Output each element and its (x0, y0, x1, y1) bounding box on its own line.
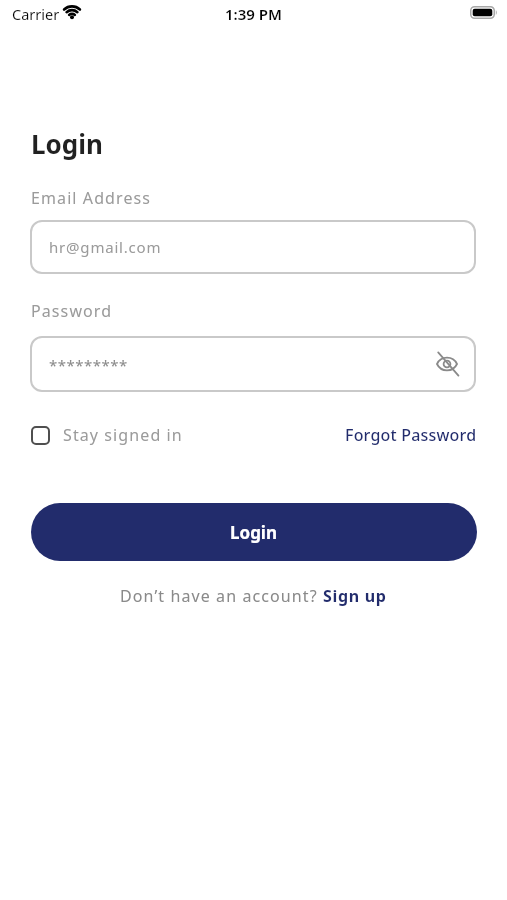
staticText: Login (31, 126, 103, 161)
button[interactable]: Sign up (323, 585, 387, 607)
button[interactable]: ********* (30, 336, 476, 392)
staticText: Sign up (323, 585, 387, 607)
staticText: ********* (49, 355, 128, 375)
staticText: Don’t have an account? (120, 585, 323, 607)
staticText: Forgot Password (345, 424, 477, 446)
staticText: Carrier (12, 4, 60, 24)
staticText: 1:39 PM (225, 4, 282, 24)
staticText: Login (230, 521, 278, 544)
button[interactable]: Stay signed in (31, 424, 183, 446)
staticText: hr@gmail.com (49, 237, 162, 257)
button[interactable]: Forgot Password (345, 424, 477, 446)
button[interactable]: Login (31, 503, 477, 561)
staticText: Stay signed in (63, 424, 183, 446)
staticText: Password (31, 300, 113, 322)
staticText: Email Address (31, 187, 152, 209)
button[interactable]: hr@gmail.com (30, 220, 476, 274)
